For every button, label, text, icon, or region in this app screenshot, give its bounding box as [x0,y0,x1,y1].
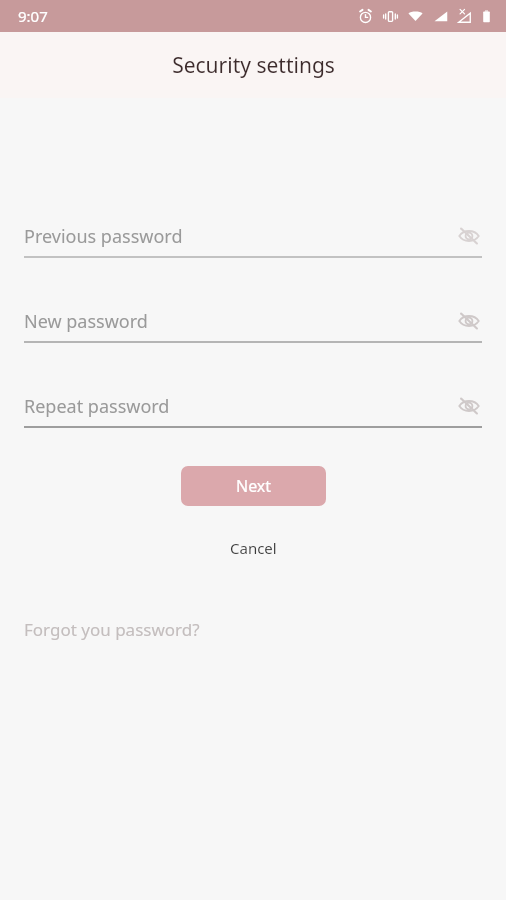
button[interactable]: New password [24,308,482,343]
staticText: Repeat password [24,394,456,419]
button[interactable]: Cancel [212,534,295,562]
staticText: Cancel [230,538,277,558]
button[interactable]: Repeat password [24,393,482,428]
button[interactable]: Show password [456,223,482,249]
staticText: 9:07 [18,6,48,26]
button[interactable]: Show password [456,308,482,334]
button[interactable]: Show password [456,393,482,419]
button[interactable]: Forgot you password? [24,614,200,645]
button[interactable]: Next [181,466,326,506]
staticText: Forgot you password? [24,618,200,641]
staticText: Previous password [24,224,456,249]
staticText: Security settings [172,51,335,80]
staticText: New password [24,309,456,334]
staticText: Next [236,475,272,497]
button[interactable]: Previous password [24,223,482,258]
